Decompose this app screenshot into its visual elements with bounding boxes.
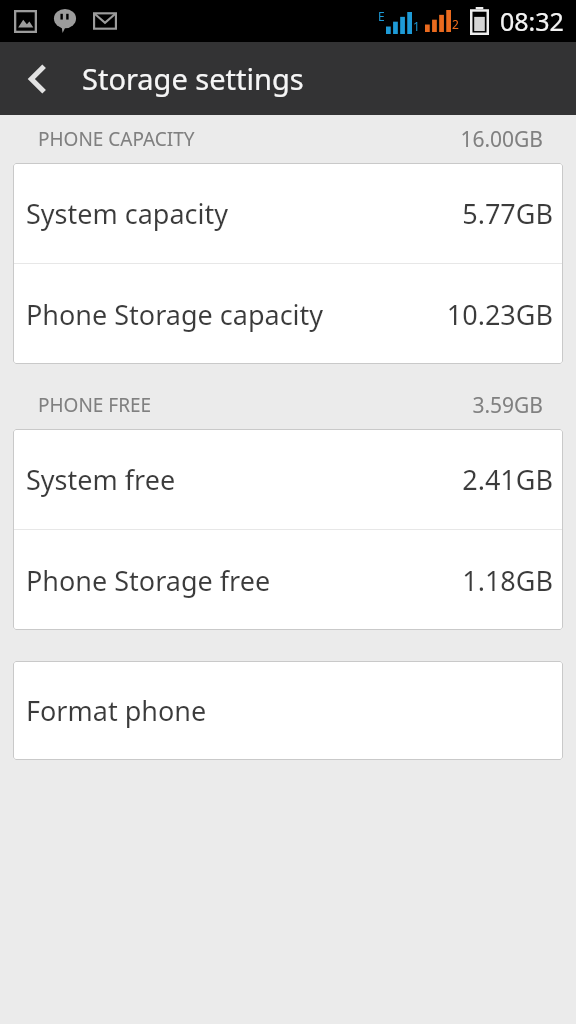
button[interactable]: System capacity (13, 163, 563, 263)
staticText: PHONE FREE (38, 392, 152, 418)
staticText: Format phone (26, 692, 207, 729)
staticText: 2 (452, 16, 459, 32)
staticText: 08:32 (500, 4, 564, 38)
staticText: Phone Storage capacity (26, 296, 324, 333)
staticText: E (378, 8, 385, 24)
button[interactable]: Back (0, 42, 78, 115)
button[interactable]: Phone Storage capacity (13, 264, 563, 364)
staticText: 10.23GB (446, 296, 553, 333)
staticText: 16.00GB (460, 125, 543, 154)
staticText: Storage settings (82, 59, 304, 98)
button[interactable]: Format phone (13, 661, 563, 760)
staticText: System free (26, 461, 176, 498)
staticText: 3.59GB (472, 391, 543, 420)
button[interactable]: System free (13, 429, 563, 529)
staticText: System capacity (26, 195, 229, 232)
staticText: 1.18GB (462, 562, 553, 599)
staticText: Phone Storage free (26, 562, 271, 599)
staticText: 5.77GB (462, 195, 553, 232)
staticText: 1 (413, 18, 420, 34)
staticText: PHONE CAPACITY (38, 126, 195, 152)
button[interactable]: Phone Storage free (13, 530, 563, 630)
staticText: 2.41GB (462, 461, 553, 498)
